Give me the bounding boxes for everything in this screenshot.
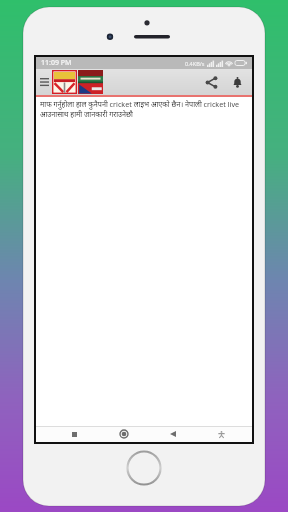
button[interactable]: Back bbox=[148, 426, 197, 442]
staticText: माफ गर्नुहोला हाल कुनैपनी cricket लाइभ आ… bbox=[40, 99, 248, 119]
button[interactable]: Open navigation menu bbox=[36, 69, 52, 95]
staticText: 0.4KB/s bbox=[185, 60, 205, 67]
button[interactable]: Notifications bbox=[224, 69, 250, 95]
button[interactable]: Accessibility bbox=[197, 426, 246, 442]
button[interactable]: Home bbox=[99, 426, 148, 442]
button[interactable]: Recent apps bbox=[50, 426, 99, 442]
button[interactable]: Share bbox=[198, 69, 224, 95]
button[interactable]: Home bbox=[126, 450, 162, 486]
staticText: 11:09 PM bbox=[41, 58, 72, 68]
button[interactable]: Nepal cricket banner bbox=[78, 70, 103, 94]
button[interactable]: App logo bbox=[52, 70, 77, 94]
